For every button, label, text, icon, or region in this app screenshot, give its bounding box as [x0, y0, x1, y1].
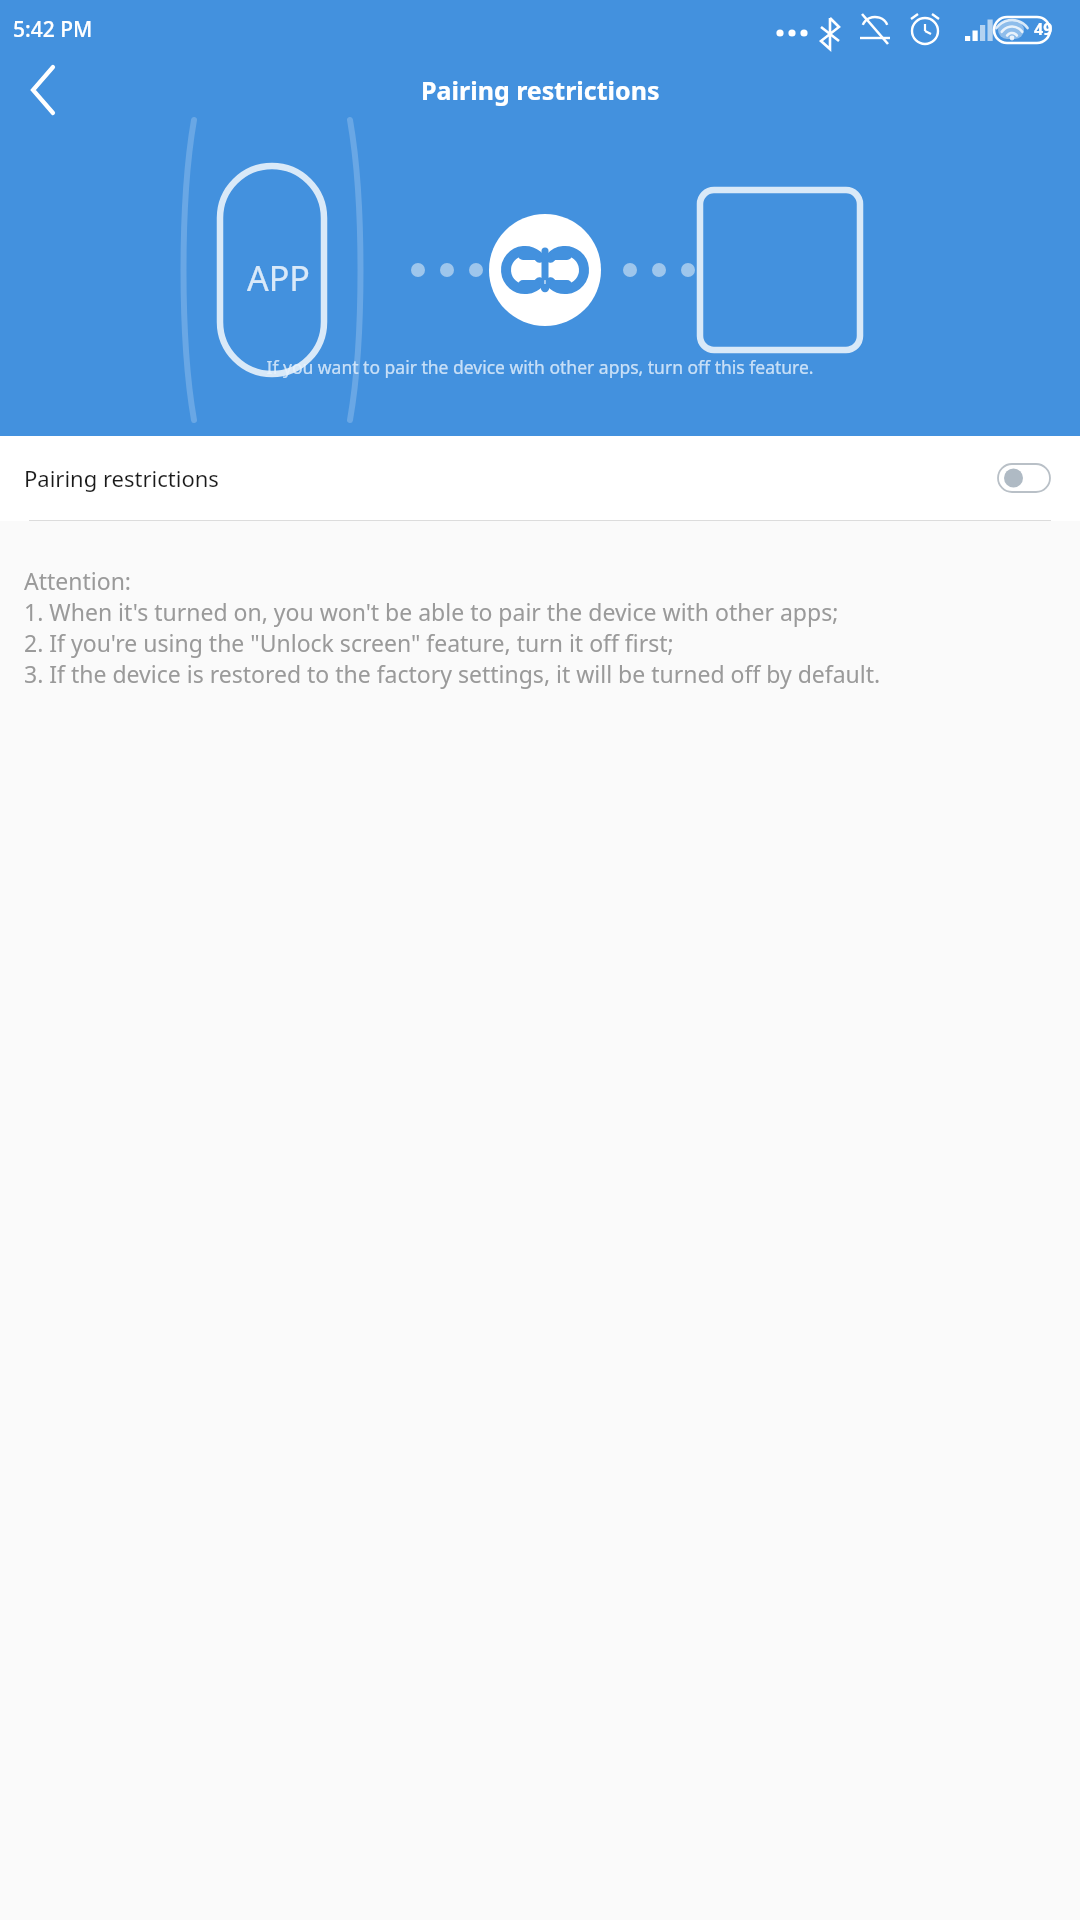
staticText: Pairing restrictions: [24, 463, 219, 493]
button[interactable]: Pairing restrictions toggle: [997, 463, 1051, 493]
staticText: 1. When it's turned on, you won't be abl…: [24, 596, 839, 627]
staticText: Pairing restrictions: [421, 73, 660, 107]
staticText: 49: [1034, 18, 1053, 40]
staticText: 2. If you're using the "Unlock screen" f…: [24, 627, 674, 658]
staticText: APP: [247, 255, 310, 301]
staticText: Attention:: [24, 565, 132, 596]
staticText: 3. If the device is restored to the fact…: [24, 658, 881, 689]
button[interactable]: Pairing restrictions: [0, 436, 1080, 520]
button[interactable]: Back: [10, 60, 74, 120]
staticText: If you want to pair the device with othe…: [2, 355, 1078, 379]
staticText: 5:42 PM: [13, 15, 93, 44]
